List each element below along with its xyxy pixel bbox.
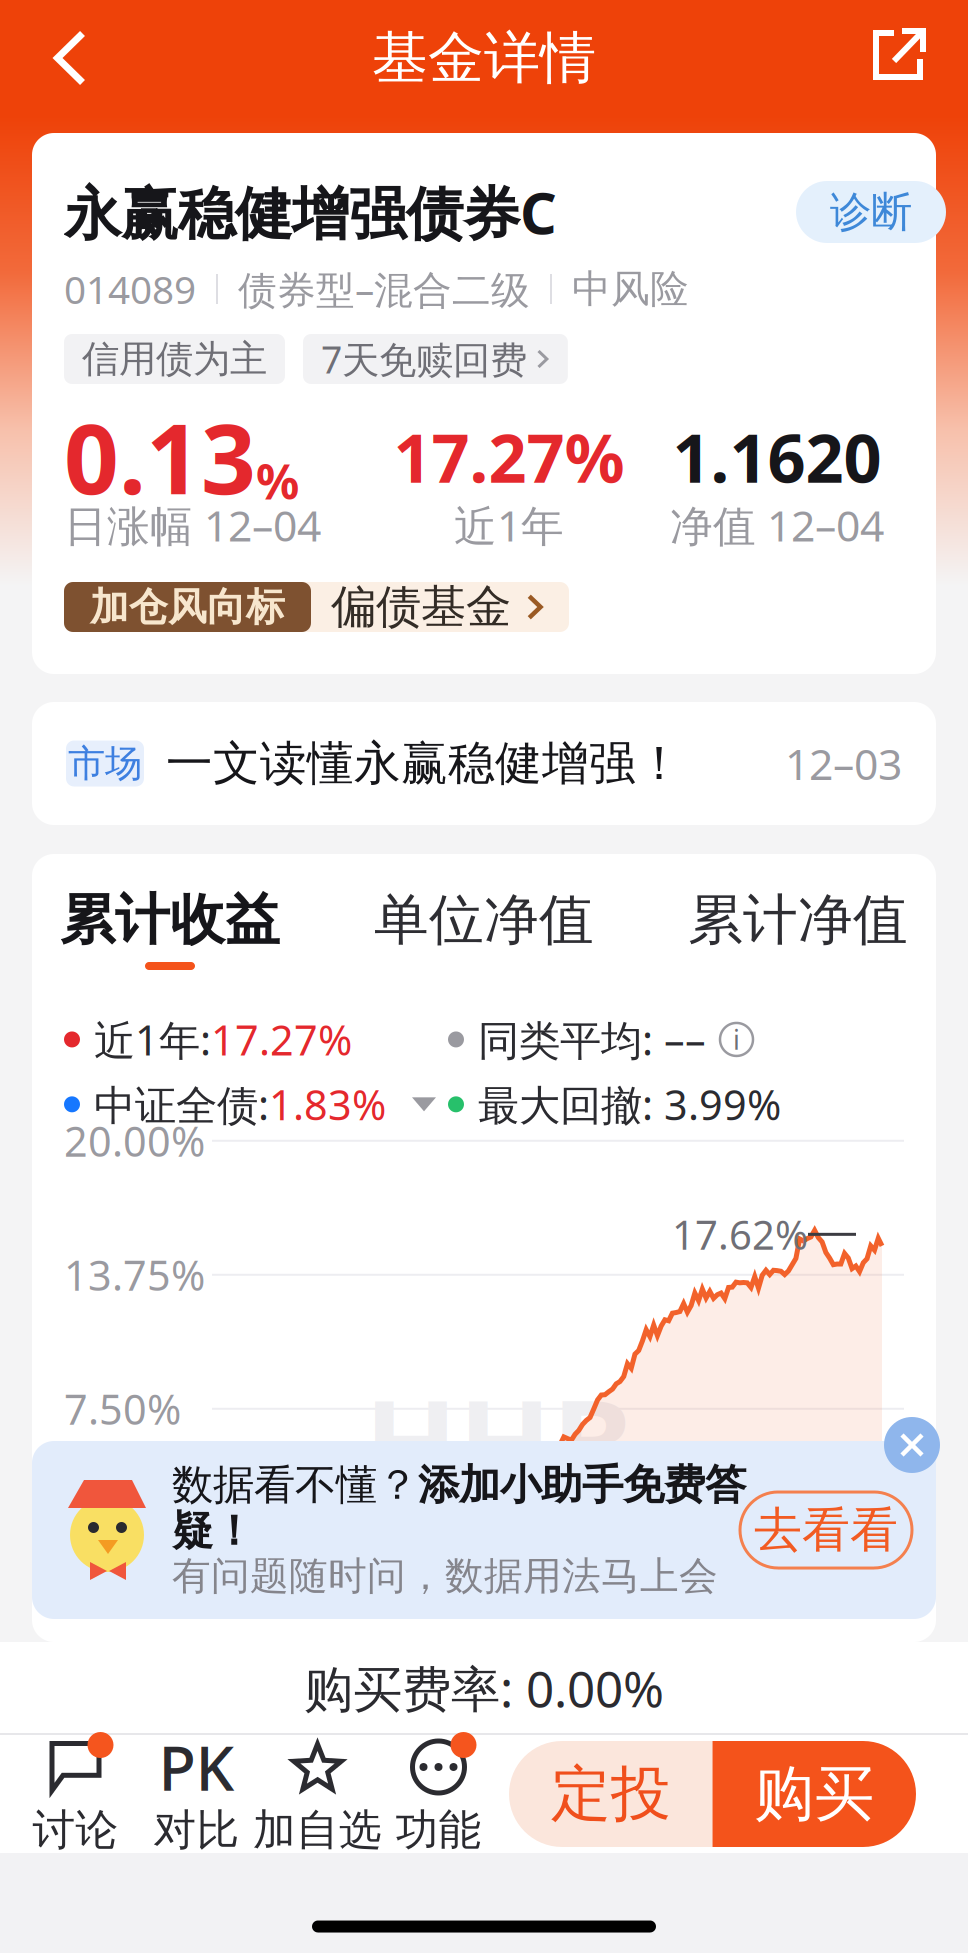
- button[interactable]: 诊断: [796, 181, 946, 243]
- staticText: 净值 12–04: [670, 497, 884, 553]
- staticText: 累计收益: [60, 886, 280, 953]
- staticText: 近1年:: [94, 1012, 211, 1067]
- staticText: 日涨幅 12–04: [64, 497, 321, 553]
- staticText: 添加小助手免费答: [418, 1460, 746, 1510]
- staticText: 加仓风向标: [90, 583, 285, 631]
- staticText: 偏债基金: [331, 579, 511, 635]
- staticText: 定投: [551, 1757, 671, 1831]
- button[interactable]: 定投: [509, 1741, 712, 1847]
- button[interactable]: Share: [842, 0, 954, 116]
- staticText: 1.1620: [672, 413, 881, 501]
- button[interactable]: 加仓风向标: [64, 582, 569, 632]
- button[interactable]: 去看看: [740, 1492, 912, 1568]
- staticText: 014089: [64, 263, 196, 315]
- staticText: PK: [158, 1726, 234, 1808]
- staticText: 7.50%: [64, 1381, 181, 1436]
- staticText: 诊断: [830, 187, 912, 237]
- staticText: 一文读懂永赢稳健增强！: [166, 735, 683, 792]
- staticText: 加自选: [253, 1804, 382, 1856]
- button[interactable]: 功能: [378, 1738, 499, 1850]
- button[interactable]: 7天免赎回费: [303, 334, 568, 384]
- button[interactable]: 讨论: [15, 1738, 136, 1850]
- button[interactable]: 加自选: [257, 1738, 378, 1850]
- staticText: 7天免赎回费: [321, 334, 527, 384]
- staticText: 13.75%: [64, 1247, 205, 1302]
- button[interactable]: 单位净值: [374, 894, 594, 970]
- staticText: 去看看: [754, 1500, 898, 1559]
- staticText: 单位净值: [374, 886, 594, 953]
- staticText: 近1年: [454, 497, 564, 553]
- staticText: i: [733, 1022, 740, 1057]
- button[interactable]: Back: [14, 0, 126, 116]
- button[interactable]: 累计净值: [688, 894, 908, 970]
- staticText: 有问题随时问，数据用法马上会: [172, 1552, 718, 1600]
- staticText: 中证全债:: [94, 1077, 269, 1132]
- staticText: 功能: [395, 1804, 481, 1856]
- staticText: 基金详情: [372, 24, 596, 92]
- staticText: 0.13: [64, 393, 256, 521]
- staticText: 债券型–混合二级: [238, 263, 530, 315]
- staticText: 购买: [754, 1757, 874, 1831]
- button[interactable]: PK: [136, 1738, 257, 1850]
- staticText: 购买费率: 0.00%: [304, 1655, 664, 1721]
- staticText: 市场: [68, 741, 142, 786]
- staticText: 永赢稳健增强债券C: [64, 174, 557, 250]
- staticText: 最大回撤: 3.99%: [478, 1077, 781, 1132]
- staticText: 对比: [153, 1804, 239, 1856]
- button[interactable]: 累计收益: [60, 894, 280, 970]
- button[interactable]: 市场: [32, 702, 936, 825]
- button[interactable]: Close: [882, 1415, 942, 1475]
- staticText: 疑！: [172, 1506, 254, 1556]
- staticText: 同类平均: ––: [478, 1012, 706, 1067]
- staticText: 17.62%: [672, 1208, 808, 1261]
- staticText: %: [256, 449, 299, 513]
- staticText: 累计净值: [688, 886, 908, 953]
- staticText: 20.00%: [64, 1113, 205, 1168]
- staticText: 12–03: [785, 735, 902, 792]
- staticText: 数据看不懂？: [172, 1460, 418, 1510]
- staticText: 中风险: [572, 265, 689, 313]
- staticText: 17.27%: [211, 1012, 352, 1067]
- button[interactable]: 购买: [712, 1741, 916, 1847]
- staticText: 1.83%: [269, 1077, 386, 1132]
- staticText: HHB: [364, 1360, 634, 1523]
- staticText: 讨论: [32, 1804, 118, 1856]
- staticText: 17.27%: [393, 413, 624, 501]
- staticText: 信用债为主: [82, 336, 267, 382]
